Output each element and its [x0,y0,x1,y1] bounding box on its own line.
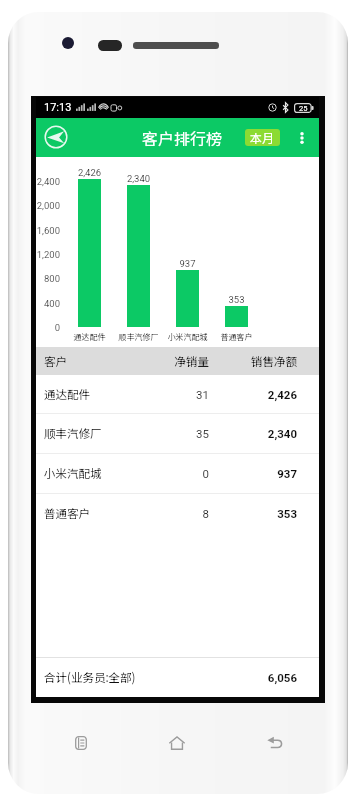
button[interactable]: Recents [68,730,94,756]
staticText: 937 [217,467,297,480]
staticText: 净销量 [129,353,209,370]
staticText: 2,426 [217,388,297,401]
staticText: 普通客户 [44,505,90,522]
staticText: 31 [129,388,209,401]
staticText: 1,600 [36,225,60,236]
staticText: 1,200 [36,249,60,260]
staticText: 客户排行榜 [142,126,223,149]
staticText: 客户 [44,353,67,370]
staticText: 2,000 [36,200,60,211]
button[interactable]: 小米汽配城 [36,454,319,493]
button[interactable]: 通达配件 [36,375,319,413]
staticText: 2,426 [69,167,110,178]
button[interactable]: Back [262,730,288,756]
staticText: 800 [36,273,60,284]
staticText: 销售净额 [217,353,297,370]
button[interactable]: 本月 [245,129,280,146]
button[interactable]: More options [288,124,316,152]
staticText: 25 [299,104,308,113]
staticText: 353 [216,294,257,305]
staticText: 17:13 [44,101,72,114]
button[interactable]: Home [164,730,190,756]
staticText: 本月 [250,129,275,146]
staticText: 400 [36,298,60,309]
staticText: 顺丰汽修厂 [116,331,161,343]
staticText: 35 [129,427,209,440]
button[interactable]: Back [39,120,73,154]
staticText: 通达配件 [67,331,112,343]
staticText: 6,056 [217,671,297,684]
staticText: 小米汽配城 [165,331,210,343]
staticText: 0 [129,467,209,480]
staticText: 0 [36,322,60,333]
staticText: 合计(业务员:全部) [44,669,136,686]
staticText: 8 [129,507,209,520]
button[interactable]: 普通客户 [36,494,319,533]
staticText: 普通客户 [214,331,259,343]
staticText: 2,340 [217,427,297,440]
staticText: 2,400 [36,176,60,187]
staticText: 小米汽配城 [44,465,102,482]
staticText: 353 [217,507,297,520]
button[interactable]: 顺丰汽修厂 [36,414,319,453]
staticText: 937 [167,258,208,269]
staticText: 顺丰汽修厂 [44,425,102,442]
staticText: 2,340 [118,173,159,184]
staticText: 通达配件 [44,386,90,403]
